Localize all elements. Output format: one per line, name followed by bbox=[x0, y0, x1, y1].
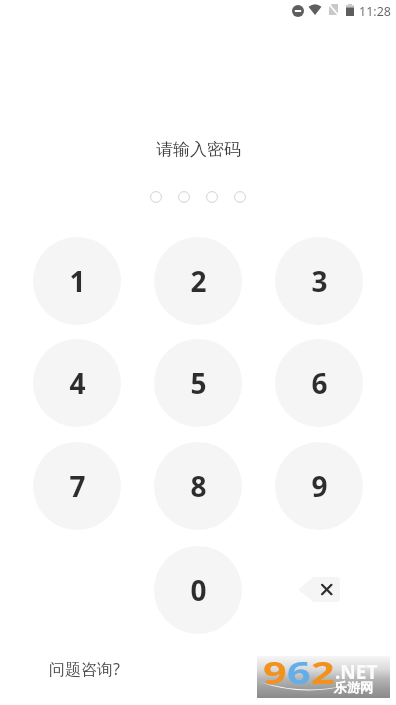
button[interactable]: 2 bbox=[154, 237, 242, 325]
button[interactable]: 3 bbox=[275, 237, 363, 325]
button[interactable]: 4 bbox=[33, 339, 121, 427]
staticText: 8 bbox=[190, 467, 207, 505]
staticText: 6 bbox=[287, 651, 311, 693]
button[interactable]: 7 bbox=[33, 442, 121, 530]
button[interactable]: 0 bbox=[154, 546, 242, 634]
staticText: 6 bbox=[311, 364, 328, 402]
staticText: 1 bbox=[69, 262, 86, 300]
staticText: 0 bbox=[190, 571, 207, 609]
staticText: 2 bbox=[311, 651, 335, 693]
staticText: 11:28 bbox=[359, 3, 391, 20]
button[interactable]: 问题咨询? bbox=[49, 658, 120, 680]
button[interactable]: 9 bbox=[275, 442, 363, 530]
button[interactable]: 8 bbox=[154, 442, 242, 530]
button[interactable]: Delete bbox=[298, 577, 340, 602]
staticText: 问题咨询? bbox=[49, 658, 120, 680]
button[interactable]: 5 bbox=[154, 339, 242, 427]
staticText: 2 bbox=[190, 262, 207, 300]
button[interactable]: 1 bbox=[33, 237, 121, 325]
staticText: 乐游网 bbox=[334, 679, 373, 695]
staticText: 7 bbox=[69, 467, 86, 505]
staticText: 5 bbox=[190, 364, 207, 402]
staticText: 9 bbox=[263, 651, 287, 693]
staticText: 3 bbox=[311, 262, 328, 300]
staticText: .NET bbox=[335, 659, 378, 685]
button[interactable]: 6 bbox=[275, 339, 363, 427]
staticText: 9 bbox=[311, 467, 328, 505]
staticText: 4 bbox=[69, 364, 86, 402]
staticText: 请输入密码 bbox=[156, 139, 241, 160]
